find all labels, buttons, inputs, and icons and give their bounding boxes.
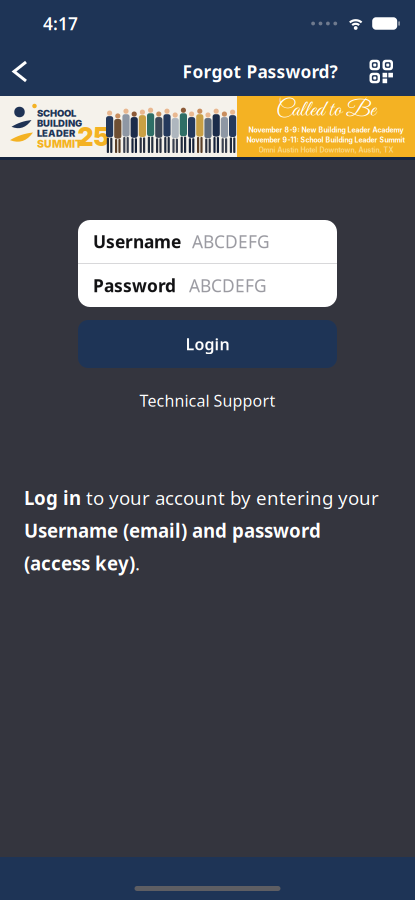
button[interactable]: Password text field	[78, 264, 337, 307]
staticText: Login	[185, 333, 229, 355]
button[interactable]: Login	[78, 320, 337, 368]
staticText: November 8-9: New Building Leader Academ…	[248, 126, 403, 134]
button[interactable]: Username text field	[78, 220, 337, 263]
staticText: November 9-11: School Building Leader Su…	[246, 136, 405, 144]
button[interactable]: Scan QR code	[369, 60, 415, 83]
staticText: 25	[77, 122, 109, 152]
staticText: Password	[93, 274, 176, 297]
button[interactable]: Back	[0, 50, 36, 93]
staticText: Username	[93, 230, 181, 253]
staticText: ABCDEFG	[189, 274, 267, 297]
staticText: BUILDING	[37, 118, 82, 129]
staticText: Called to Be	[276, 96, 376, 125]
staticText: Forgot Password?	[182, 60, 337, 83]
staticText: Log in to your account by entering your …	[24, 485, 379, 576]
staticText: ABCDEFG	[192, 230, 270, 253]
button[interactable]: Technical Support	[139, 368, 275, 411]
staticText: Technical Support	[139, 390, 275, 411]
staticText: 4:17	[43, 12, 78, 35]
staticText: LEADER	[37, 128, 75, 139]
staticText: Omni Austin Hotel Downtown, Austin, TX	[258, 146, 393, 154]
staticText: SCHOOL	[37, 108, 76, 119]
staticText: SUMMIT	[37, 138, 82, 150]
button[interactable]: School Building Leader Summit banner	[0, 96, 415, 160]
